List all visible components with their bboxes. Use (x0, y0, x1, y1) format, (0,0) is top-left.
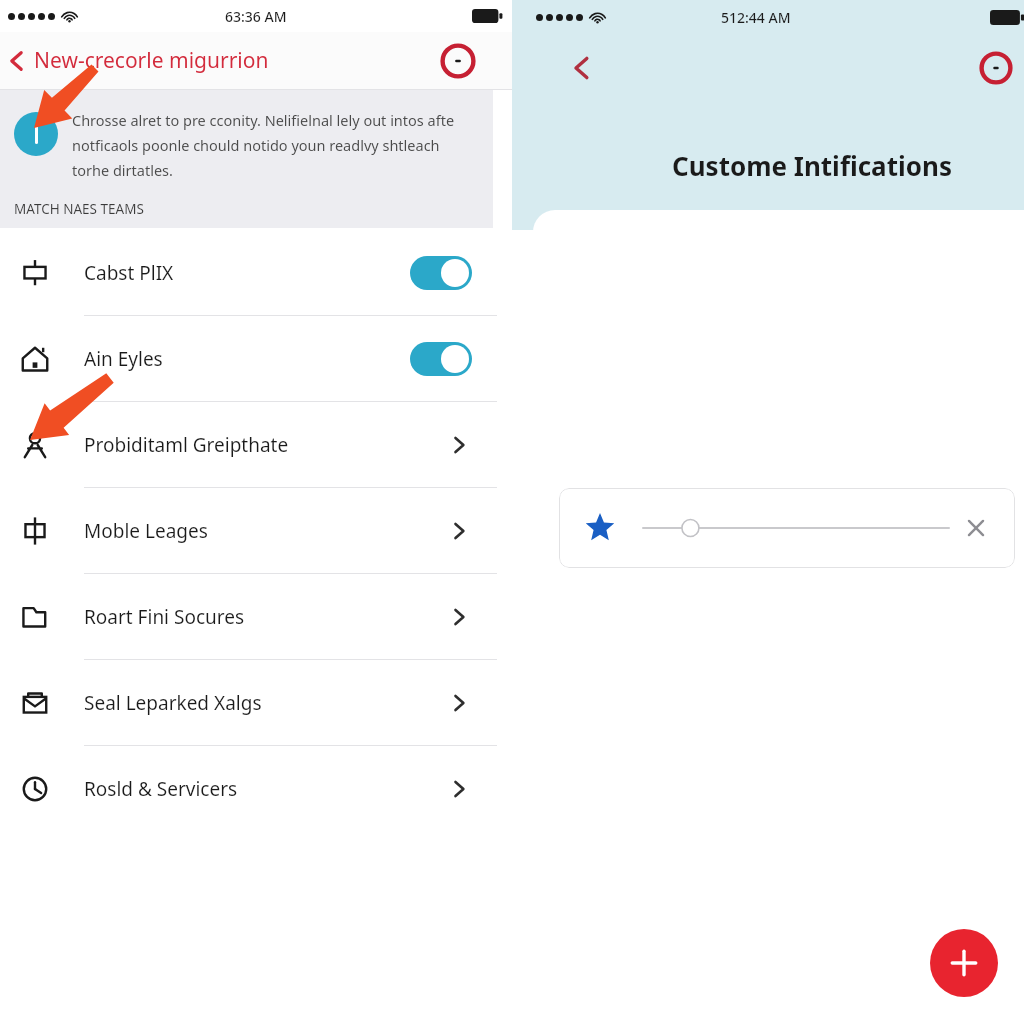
staticText: Cabst PlIX (84, 260, 410, 286)
staticText: 512:44 AM (721, 8, 791, 27)
button[interactable]: Remove (959, 511, 993, 545)
staticText: New-crecorle migurrion (34, 46, 269, 75)
button[interactable]: Record (974, 46, 1018, 90)
staticText: Chrosse alret to pre cconity. Nelifielna… (72, 110, 472, 180)
staticText: Rosld & Servicers (84, 776, 448, 802)
button[interactable]: Toggle Ain Eyles (410, 342, 472, 376)
staticText: Custome Intifications (672, 148, 952, 183)
button[interactable]: Ain Eyles (0, 316, 512, 401)
button[interactable]: Rosld & Servicers (0, 746, 512, 831)
staticText: Probiditaml Greipthate (84, 432, 448, 458)
button[interactable]: Back (558, 44, 606, 92)
button[interactable]: Cabst PlIX (0, 230, 512, 315)
staticText: MATCH NAES TEAMS (14, 200, 144, 218)
button[interactable]: Moble Leages (0, 488, 512, 573)
button[interactable]: Probiditaml Greipthate (0, 402, 512, 487)
button[interactable]: Seal Leparked Xalgs (0, 660, 512, 745)
button[interactable]: New-crecorle migurrion (0, 40, 277, 81)
staticText: 63:36 AM (225, 7, 287, 26)
staticText: Ain Eyles (84, 346, 410, 372)
staticText: Seal Leparked Xalgs (84, 690, 448, 716)
button[interactable]: Add (930, 929, 998, 997)
button[interactable]: Toggle Cabst PlIX (410, 256, 472, 290)
staticText: Moble Leages (84, 518, 448, 544)
button[interactable]: Record (438, 41, 478, 81)
button[interactable]: Roart Fini Socures (0, 574, 512, 659)
staticText: Roart Fini Socures (84, 604, 448, 630)
button[interactable]: Remove (559, 488, 1015, 568)
